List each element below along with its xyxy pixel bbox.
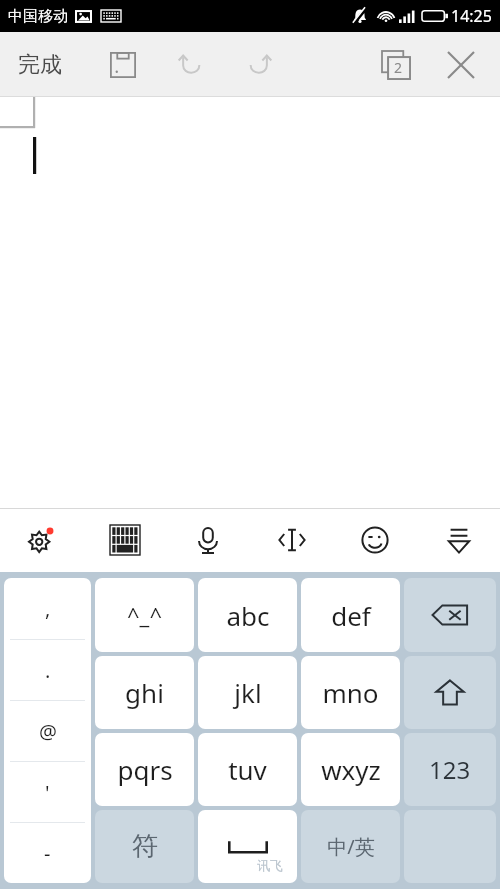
button[interactable]: Settings [10, 512, 72, 568]
button[interactable]: tuv [198, 733, 297, 806]
staticText: , [45, 595, 51, 622]
staticText: abc [226, 598, 270, 633]
button[interactable]: mno [301, 656, 400, 729]
staticText: def [331, 598, 371, 633]
button[interactable]: ^_^ [95, 578, 194, 652]
button[interactable]: Save [100, 42, 146, 88]
button[interactable]: Move cursor [261, 512, 323, 568]
staticText: wxyz [321, 752, 381, 787]
staticText: 中国移动 [8, 7, 68, 26]
button[interactable]: wxyz [301, 733, 400, 806]
button[interactable]: 123 [404, 733, 496, 806]
staticText: 符 [132, 830, 158, 863]
staticText: jkl [234, 675, 262, 710]
staticText: mno [322, 675, 379, 710]
staticText: 讯飞 [257, 857, 283, 873]
button[interactable]: Shift [404, 656, 496, 729]
button[interactable]: pqrs [95, 733, 194, 806]
button[interactable]: Pages [372, 41, 420, 89]
button[interactable]: Undo [168, 42, 214, 88]
staticText: . [45, 657, 51, 684]
staticText: - [44, 840, 51, 867]
staticText: ' [45, 779, 50, 806]
staticText: 完成 [18, 51, 62, 79]
button[interactable]: Keyboard layout [94, 512, 156, 568]
button[interactable]: Close [436, 40, 486, 90]
staticText: 14:25 [451, 5, 492, 27]
button[interactable]: Emoji [344, 512, 406, 568]
button[interactable]: ghi [95, 656, 194, 729]
staticText: 2 [394, 58, 403, 77]
staticText: 123 [429, 753, 471, 786]
button[interactable]: 中/英 [301, 810, 400, 883]
button[interactable]: abc [198, 578, 297, 652]
button[interactable]: Hide keyboard [428, 512, 490, 568]
button[interactable]: Redo [236, 42, 282, 88]
button[interactable]: 符 [95, 810, 194, 883]
button[interactable]: , [4, 578, 91, 883]
staticText: tuv [228, 752, 267, 787]
staticText: ghi [125, 675, 164, 710]
button[interactable]: jkl [198, 656, 297, 729]
button[interactable]: def [301, 578, 400, 652]
button[interactable]: 完成 [12, 45, 68, 85]
button[interactable]: 讯飞 [198, 810, 297, 883]
staticText: 中/英 [327, 833, 375, 860]
button[interactable]: Voice input [177, 512, 239, 568]
staticText: @ [39, 718, 57, 745]
button[interactable]: Backspace [404, 578, 496, 652]
staticText: ^_^ [127, 600, 162, 630]
staticText: pqrs [117, 752, 173, 787]
